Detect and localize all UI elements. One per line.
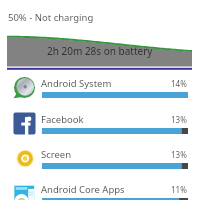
staticText: Screen — [41, 148, 72, 161]
staticText: Android System — [41, 77, 112, 90]
staticText: 50% - Not charging — [8, 11, 94, 24]
button[interactable]: Android System — [0, 75, 200, 109]
button[interactable]: Android Core Apps — [0, 181, 200, 200]
button[interactable]: Screen — [0, 146, 200, 180]
other: Screen — [13, 147, 36, 170]
staticText: 13% — [171, 149, 187, 160]
staticText: 2h 20m 28s on battery — [47, 44, 153, 58]
other: Facebook — [13, 112, 36, 135]
staticText: 13% — [171, 114, 187, 125]
staticText: Android Core Apps — [41, 183, 125, 196]
staticText: 11% — [171, 184, 187, 195]
button[interactable]: Facebook — [0, 111, 200, 145]
other: Android Core Apps — [13, 182, 36, 200]
staticText: 14% — [171, 78, 187, 89]
button[interactable]: 50% - Not charging — [8, 11, 94, 24]
staticText: Facebook — [41, 113, 84, 126]
other: Android System — [13, 76, 36, 99]
